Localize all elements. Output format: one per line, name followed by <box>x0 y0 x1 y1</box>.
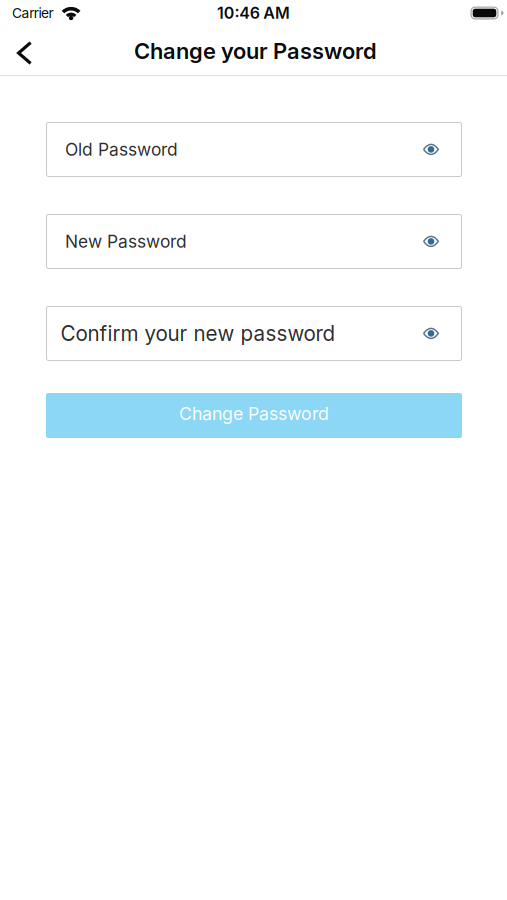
button[interactable]: Change Password <box>46 393 462 438</box>
staticText: New Password <box>65 231 187 252</box>
staticText: Confirm your new password <box>60 321 335 346</box>
button[interactable]: Show password <box>416 315 446 351</box>
staticText: Carrier <box>12 5 54 21</box>
staticText: 10:46 AM <box>217 3 290 23</box>
staticText: Change your Password <box>134 38 377 64</box>
staticText: Old Password <box>65 139 178 160</box>
button[interactable]: Show password <box>416 223 446 259</box>
button[interactable]: Show password <box>416 131 446 167</box>
staticText: Change Password <box>179 403 329 424</box>
button[interactable]: Back <box>0 32 32 74</box>
